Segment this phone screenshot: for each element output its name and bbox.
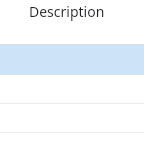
button[interactable]: Description	[0, 0, 144, 44]
staticText: Description	[29, 2, 105, 21]
